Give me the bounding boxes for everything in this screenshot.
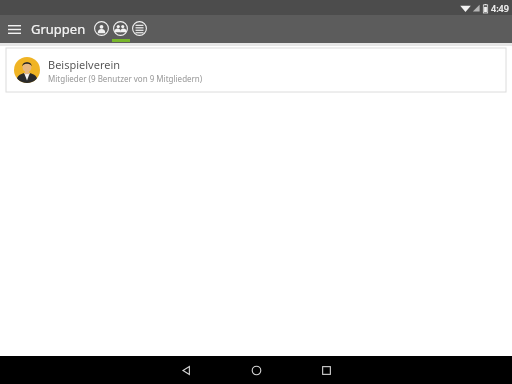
button[interactable]: Benutzer	[92, 15, 111, 43]
button[interactable]: Navigationsmenü öffnen	[0, 15, 28, 43]
staticText: Mitglieder (9 Benutzer von 9 Mitgliedern…	[48, 73, 203, 84]
button[interactable]: Letzte Apps	[304, 356, 348, 384]
button[interactable]: Listen	[130, 15, 149, 43]
staticText: 4:49	[491, 2, 509, 14]
button[interactable]: Zurück	[164, 356, 208, 384]
button[interactable]: Startseite	[234, 356, 278, 384]
button[interactable]: Beispielverein	[6, 48, 506, 92]
staticText: Gruppen	[31, 20, 86, 38]
button[interactable]: Gruppen	[111, 15, 130, 43]
staticText: Beispielverein	[48, 57, 121, 72]
